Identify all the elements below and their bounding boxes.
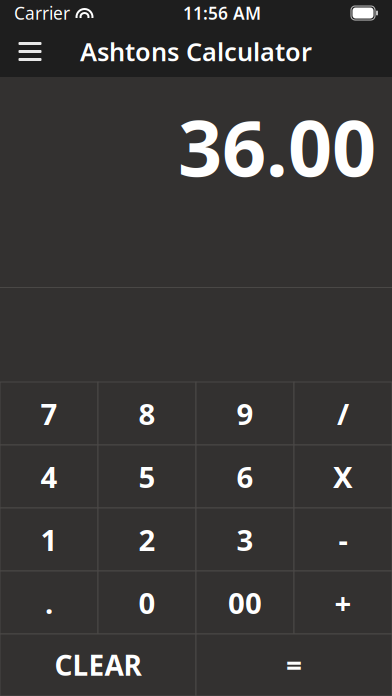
button[interactable]: + <box>294 571 392 634</box>
staticText: 9 <box>236 394 253 433</box>
button[interactable]: 5 <box>98 445 196 508</box>
staticText: CLEAR <box>54 646 141 684</box>
button[interactable]: Menu <box>7 28 53 74</box>
staticText: 00 <box>228 583 262 622</box>
staticText: X <box>333 457 353 496</box>
button[interactable]: X <box>294 445 392 508</box>
button[interactable]: 8 <box>98 382 196 445</box>
button[interactable]: . <box>0 571 98 634</box>
staticText: - <box>338 520 347 559</box>
staticText: . <box>45 583 53 622</box>
button[interactable]: 2 <box>98 508 196 571</box>
button[interactable]: / <box>294 382 392 445</box>
staticText: 5 <box>138 457 155 496</box>
staticText: / <box>337 394 349 433</box>
staticText: 6 <box>236 457 253 496</box>
staticText: 3 <box>236 520 253 559</box>
staticText: Carrier <box>14 1 70 24</box>
button[interactable]: 3 <box>196 508 294 571</box>
staticText: = <box>286 646 302 684</box>
staticText: 36.00 <box>178 95 376 198</box>
button[interactable]: - <box>294 508 392 571</box>
button[interactable]: = <box>196 634 392 696</box>
staticText: 2 <box>138 520 155 559</box>
button[interactable]: 4 <box>0 445 98 508</box>
staticText: 0 <box>138 583 155 622</box>
staticText: 8 <box>138 394 155 433</box>
button[interactable]: 00 <box>196 571 294 634</box>
staticText: 1 <box>40 520 57 559</box>
button[interactable]: 7 <box>0 382 98 445</box>
staticText: + <box>334 583 351 622</box>
staticText: 7 <box>40 394 57 433</box>
button[interactable]: 6 <box>196 445 294 508</box>
button[interactable]: 1 <box>0 508 98 571</box>
staticText: Ashtons Calculator <box>80 35 312 68</box>
button[interactable]: 9 <box>196 382 294 445</box>
button[interactable]: 0 <box>98 571 196 634</box>
staticText: 4 <box>40 457 57 496</box>
staticText: 11:56 AM <box>183 1 261 24</box>
button[interactable]: CLEAR <box>0 634 196 696</box>
